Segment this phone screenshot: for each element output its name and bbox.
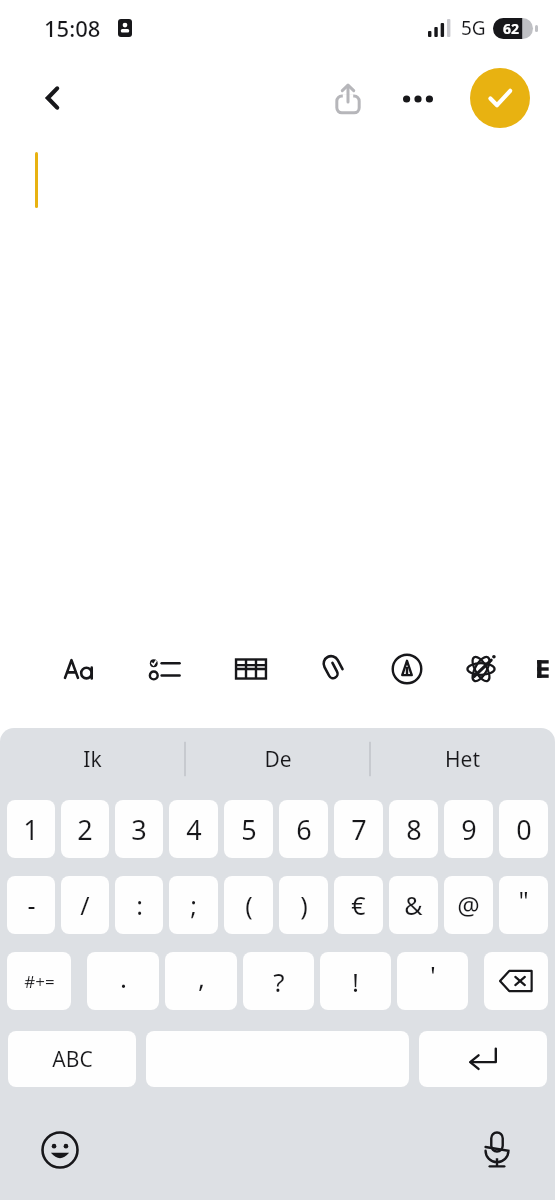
button[interactable]: ( [224,876,273,934]
button[interactable]: Dictate [469,1122,525,1178]
staticText: : [136,888,143,922]
button[interactable]: Text format [57,645,105,693]
staticText: 7 [351,811,367,848]
button[interactable]: " [499,876,548,934]
staticText: , [198,960,205,995]
staticText: 8 [406,811,422,848]
button[interactable]: 8 [389,800,438,858]
staticText: #+= [24,970,55,993]
button[interactable]: ? [243,952,314,1010]
staticText: 3 [131,811,147,848]
staticText: - [27,888,36,922]
staticText: . [120,960,127,995]
button[interactable]: 5 [224,800,273,858]
button[interactable]: / [61,876,109,934]
staticText: Het [445,745,480,774]
button[interactable]: #+= [7,952,71,1010]
button[interactable]: More options [383,70,453,127]
button[interactable]: @ [444,876,493,934]
staticText: ) [300,888,308,922]
button[interactable]: Bold [524,645,555,693]
button[interactable]: 3 [115,800,163,858]
staticText: ( [245,888,253,922]
staticText: ! [352,964,359,999]
button[interactable]: 4 [169,800,218,858]
button[interactable]: ! [320,952,391,1010]
staticText: 6 [296,811,312,848]
staticText: ; [190,888,197,922]
staticText: ' [430,957,436,992]
button[interactable]: Markup [383,645,431,693]
button[interactable]: Table [227,645,275,693]
staticText: Ik [83,745,102,774]
button[interactable]: Share [313,70,383,127]
button[interactable]: & [389,876,438,934]
button[interactable]: Return [419,1031,547,1087]
button[interactable]: - [7,876,55,934]
button[interactable]: 1 [7,800,55,858]
staticText: 9 [461,811,477,848]
staticText: 1 [23,811,39,848]
staticText: 5G [461,15,486,41]
button[interactable]: € [334,876,383,934]
button[interactable]: Backspace [484,952,548,1010]
button[interactable]: . [87,952,159,1010]
staticText: & [404,888,423,922]
button[interactable]: Het [370,728,555,790]
staticText: " [518,883,529,917]
button[interactable]: : [115,876,163,934]
button[interactable]: Checklist [141,645,189,693]
staticText: 2 [77,811,93,848]
button[interactable]: 6 [279,800,328,858]
button[interactable]: , [165,952,237,1010]
button[interactable]: Ik [0,728,185,790]
staticText: 4 [186,811,202,848]
staticText: De [264,745,292,774]
button[interactable]: Done [470,68,530,128]
button[interactable]: ) [279,876,328,934]
button[interactable]: 2 [61,800,109,858]
button[interactable]: ; [169,876,218,934]
staticText: ABC [52,1045,93,1074]
staticText: ? [273,964,285,999]
button[interactable]: ABC [8,1031,136,1087]
staticText: € [351,888,366,922]
staticText: 5 [241,811,257,848]
button[interactable]: Attach [310,645,358,693]
staticText: 62 [503,19,520,38]
button[interactable]: 0 [499,800,548,858]
staticText: @ [457,888,480,922]
button[interactable]: De [185,728,370,790]
button[interactable]: 9 [444,800,493,858]
button[interactable]: ' [397,952,468,1010]
staticText: 15:08 [44,13,101,43]
button[interactable]: AI assist [457,645,505,693]
staticText: 0 [516,811,532,848]
button[interactable]: Emoji [32,1122,88,1178]
button[interactable]: Back [23,68,83,128]
button[interactable]: 7 [334,800,383,858]
staticText: / [80,888,90,922]
